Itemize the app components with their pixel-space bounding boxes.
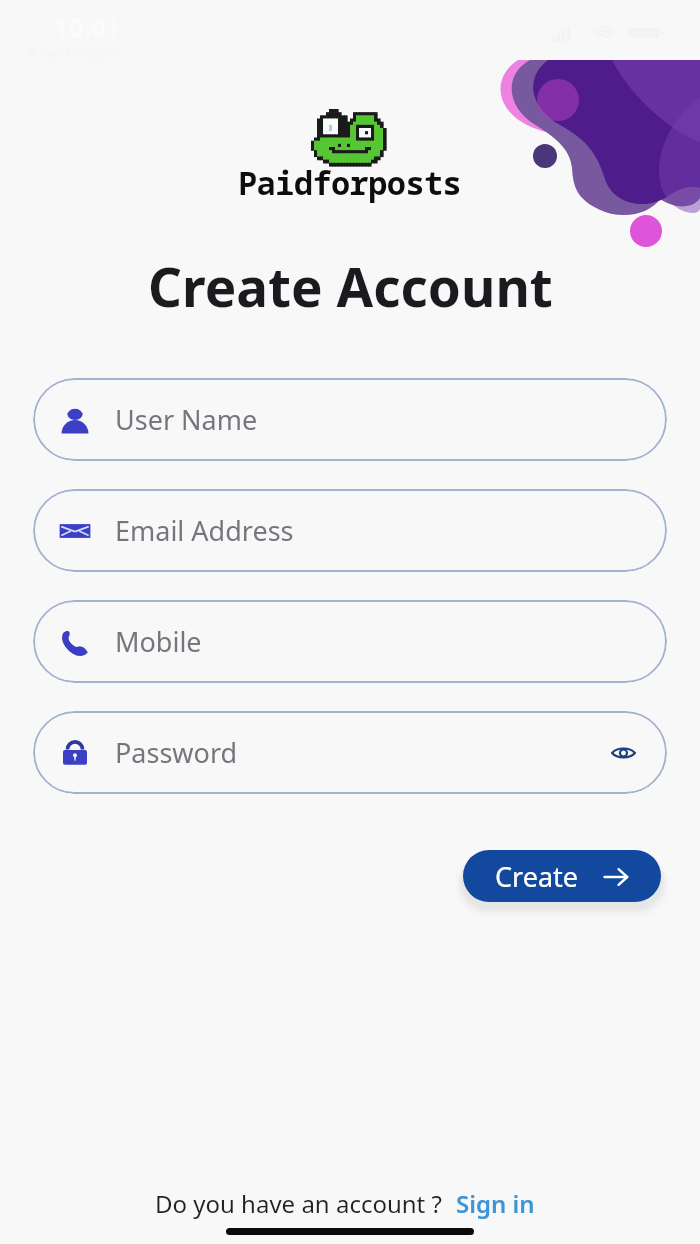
button[interactable]: User Name (33, 378, 667, 461)
button[interactable]: Password (33, 711, 667, 794)
button[interactable]: Mobile (33, 600, 667, 683)
button[interactable]: Create (463, 850, 661, 902)
button[interactable]: Sign in (454, 1187, 537, 1220)
staticText: Email Address (115, 512, 294, 549)
staticText: Create Account (148, 250, 553, 322)
staticText: User Name (115, 401, 258, 438)
staticText: Paidforposts (238, 161, 462, 205)
staticText: Sign in (456, 1187, 535, 1220)
button[interactable]: Email Address (33, 489, 667, 572)
staticText: Mobile (115, 623, 202, 660)
staticText: Password (115, 734, 238, 771)
staticText: Create (495, 858, 579, 895)
staticText: Do you have an account ? (155, 1187, 442, 1220)
button[interactable]: Show password (606, 736, 640, 770)
